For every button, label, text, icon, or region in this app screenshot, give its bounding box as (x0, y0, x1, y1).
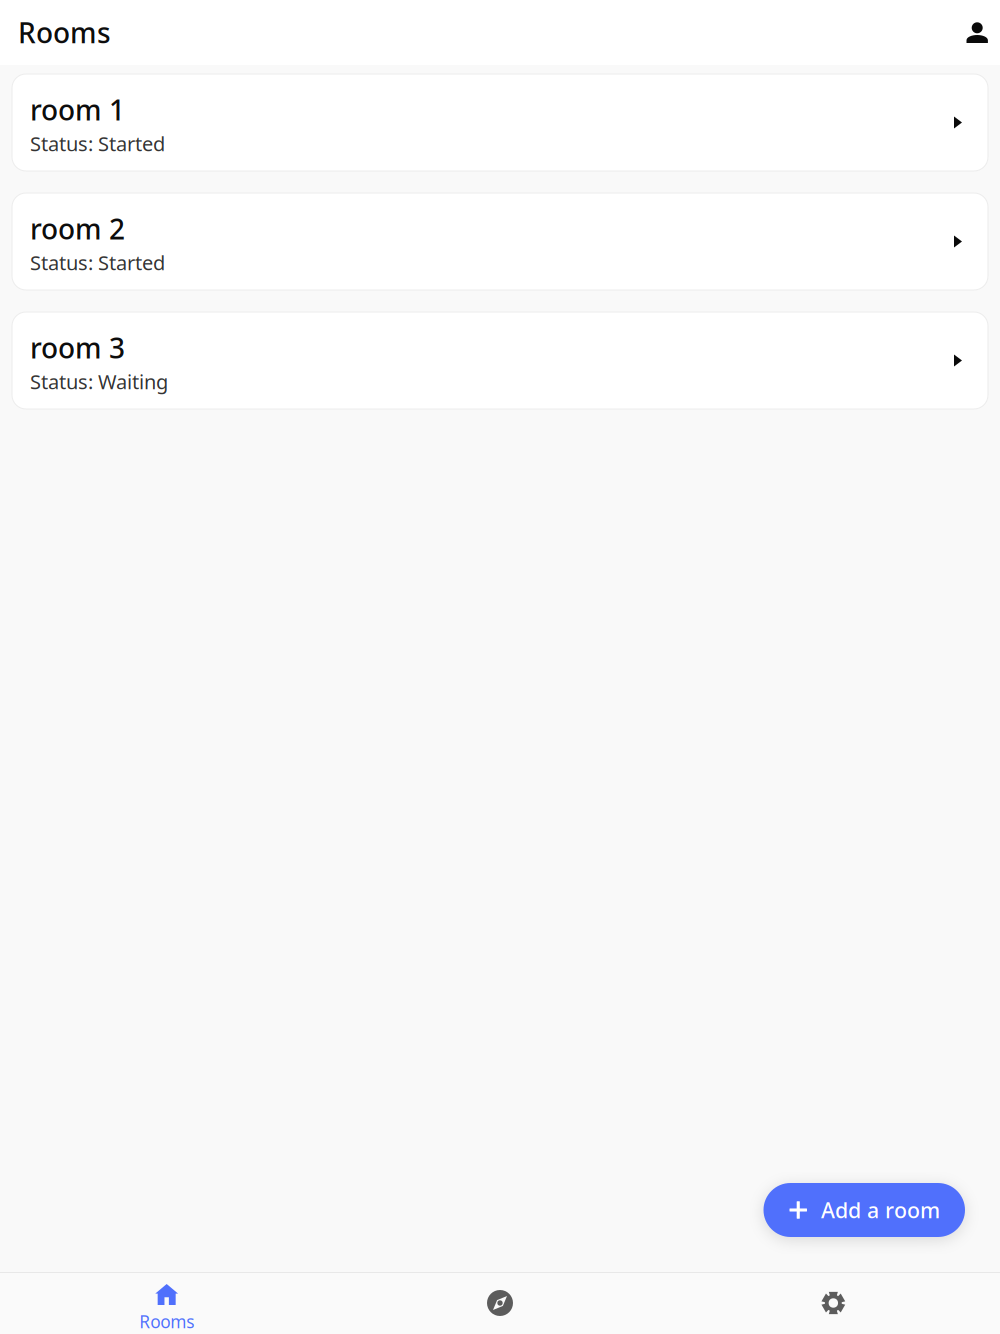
staticText: Status: Waiting (30, 368, 168, 395)
staticText: room 1 (30, 91, 125, 128)
button[interactable]: Settings (667, 1272, 1000, 1334)
staticText: Add a room (821, 1196, 940, 1224)
button[interactable]: room 2 (12, 193, 988, 290)
staticText: room 2 (30, 210, 125, 247)
staticText: room 3 (30, 329, 125, 366)
staticText: Rooms (18, 14, 111, 51)
button[interactable]: Rooms (0, 1272, 333, 1334)
staticText: Rooms (139, 1310, 194, 1333)
button[interactable]: room 3 (12, 312, 988, 409)
button[interactable]: room 1 (12, 74, 988, 171)
button[interactable]: Explore (333, 1272, 667, 1334)
staticText: Status: Started (30, 130, 165, 157)
button[interactable]: Account (944, 11, 1000, 54)
staticText: Status: Started (30, 249, 165, 276)
button[interactable]: Add a room (763, 1183, 965, 1237)
